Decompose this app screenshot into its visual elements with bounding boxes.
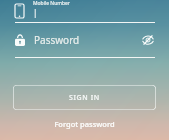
button[interactable]: Show password bbox=[141, 33, 155, 47]
staticText: | bbox=[33, 7, 38, 18]
button[interactable]: SIGN IN bbox=[13, 85, 156, 110]
button[interactable]: Mobile Number bbox=[0, 0, 169, 22]
staticText: Mobile Number bbox=[33, 0, 70, 7]
staticText: SIGN IN bbox=[69, 93, 100, 103]
staticText: Password bbox=[34, 33, 141, 47]
button[interactable]: Forgot password bbox=[0, 117, 169, 131]
staticText: Forgot password bbox=[54, 119, 115, 129]
button[interactable]: Password bbox=[0, 23, 169, 57]
